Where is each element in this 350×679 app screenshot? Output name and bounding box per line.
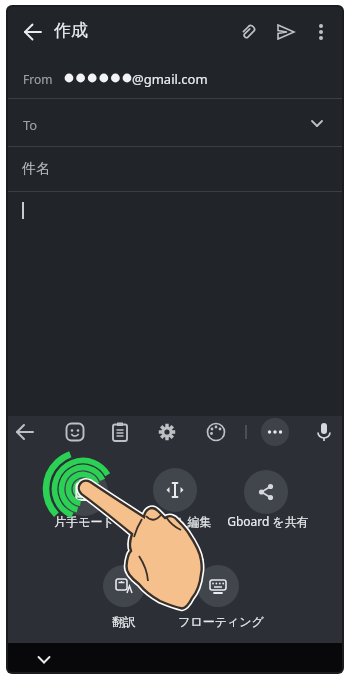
button[interactable] [313,421,335,443]
staticText: From [23,71,53,87]
button[interactable] [109,421,131,443]
staticText: テキスト編集 [138,514,212,529]
button[interactable] [60,468,108,516]
button[interactable] [8,192,342,416]
staticText: @gmail.com [132,70,208,88]
button[interactable] [197,565,239,607]
button[interactable] [205,421,227,443]
staticText: 件名 [22,160,50,178]
button[interactable] [36,654,52,668]
staticText: 片手モード [54,514,115,529]
button[interactable] [244,470,288,514]
staticText: 翻訳 [112,614,136,629]
staticText: Gboard を共有 [227,513,309,529]
button[interactable] [236,20,260,44]
button[interactable] [311,20,331,44]
button[interactable]: 件名 [8,147,342,191]
button[interactable]: From [8,58,342,98]
staticText: フローティング [178,614,264,629]
button[interactable] [156,421,178,443]
button[interactable] [103,565,145,607]
button[interactable] [153,468,197,512]
button[interactable] [14,421,36,443]
button[interactable] [64,421,86,443]
staticText: 作成 [54,20,88,41]
button[interactable] [261,418,289,446]
button[interactable]: To [8,99,342,146]
staticText: To [23,116,38,134]
button[interactable] [23,22,43,42]
button[interactable] [274,20,298,44]
